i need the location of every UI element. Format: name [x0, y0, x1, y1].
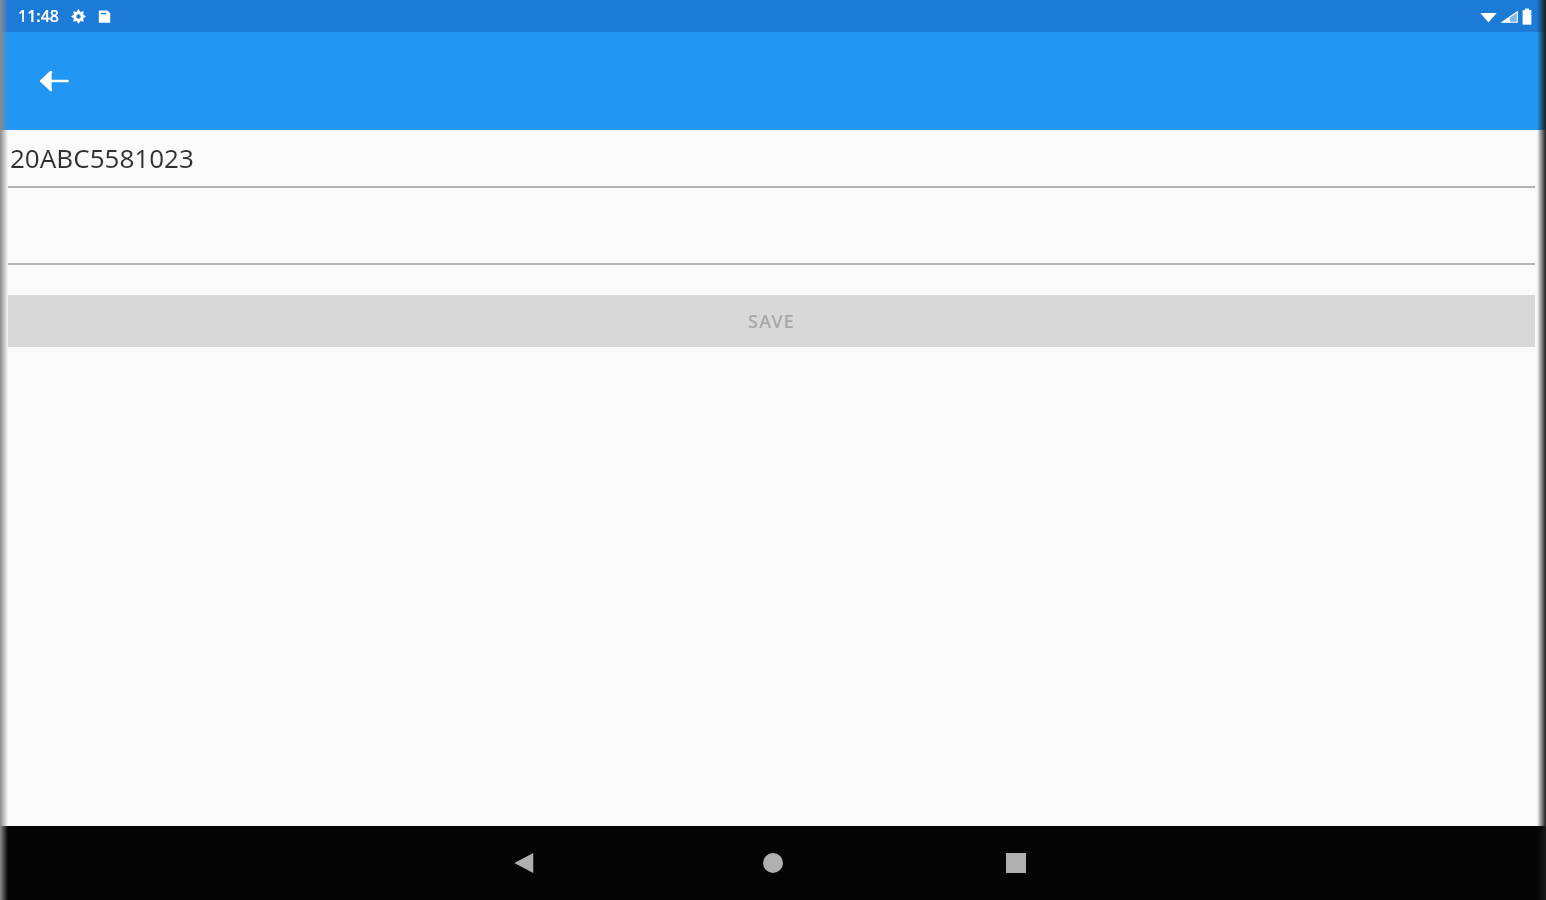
button[interactable]: Home [736, 826, 810, 900]
button[interactable]: Recent apps [979, 826, 1053, 900]
staticText: SAVE [748, 309, 795, 334]
button[interactable]: 20ABC5581023 [8, 130, 1535, 188]
staticText: 11:48 [18, 5, 59, 27]
button[interactable]: Back [487, 826, 561, 900]
button[interactable]: Back [20, 47, 88, 115]
staticText: 20ABC5581023 [10, 140, 194, 175]
button[interactable] [8, 188, 1535, 265]
